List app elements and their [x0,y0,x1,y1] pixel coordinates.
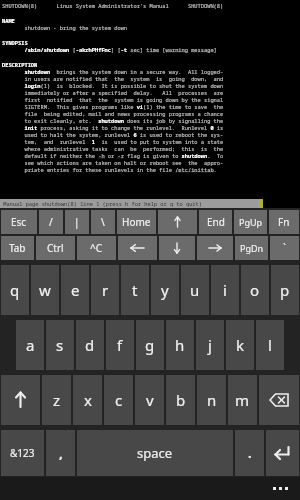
button[interactable]: \ [91,210,115,234]
staticText: ` [283,241,286,255]
button[interactable]: x [73,375,102,425]
button[interactable]: Enter [266,430,299,476]
button[interactable]: s [46,320,74,370]
staticText: \ [101,215,105,229]
staticText: file being edited, mail and news process… [2,110,224,117]
staticText: Manual page shutdown(8) line 1 (press h … [0,200,202,207]
staticText: tem, and runlevel 1 is used to put to sy… [2,138,224,145]
staticText: Home [122,215,151,229]
button[interactable]: Right [197,236,233,260]
staticText: b [176,390,186,410]
staticText: w [39,280,51,300]
staticText: PgUp [239,216,263,228]
button[interactable]: PgDn [235,236,268,260]
staticText: , [59,444,63,462]
staticText: default if neither the -h or -r flag is … [2,152,224,159]
button[interactable]: y [151,265,179,315]
staticText: / [49,215,53,229]
staticText: SHUTDOWN(8) Linux System Administrator's… [2,2,224,9]
button[interactable]: v [135,375,164,425]
staticText: l [268,335,272,355]
button[interactable]: Shift [1,375,40,425]
staticText: Fn [278,215,290,229]
button[interactable]: Ctrl [36,236,75,260]
staticText: first notified that the system is going … [2,96,224,103]
button[interactable]: k [226,320,254,370]
button[interactable]: | [65,210,89,234]
staticText: x [84,390,92,410]
button[interactable]: Fn [269,210,299,234]
button[interactable]: p [271,265,299,315]
button[interactable]: Up [158,210,197,234]
button[interactable]: d [76,320,104,370]
staticText: i [223,280,227,300]
staticText: h [175,335,185,355]
button[interactable]: Left [118,236,157,260]
button[interactable]: i [211,265,239,315]
button[interactable]: space [77,430,233,476]
button[interactable]: f [106,320,134,370]
staticText: Tab [9,241,26,255]
staticText: DESCRIPTION [2,61,38,68]
staticText: e [71,280,80,300]
button[interactable]: m [228,375,257,425]
staticText: p [280,280,290,300]
staticText: ^C [90,241,103,255]
button[interactable]: Esc [1,210,37,234]
staticText: g [145,335,155,355]
button[interactable]: c [104,375,133,425]
button[interactable]: q [1,265,29,315]
button[interactable]: End [199,210,232,234]
button[interactable]: , [46,430,75,476]
staticText: shutdown - bring the system down [2,24,128,31]
button[interactable]: Down [159,236,195,260]
button[interactable]: n [197,375,226,425]
button[interactable]: w [31,265,59,315]
staticText: m [235,390,250,410]
button[interactable]: z [42,375,71,425]
button[interactable]: g [136,320,164,370]
staticText: shutdown brings the system down in a sec… [2,68,224,75]
staticText: j [208,335,212,355]
button[interactable]: Backspace [259,375,299,425]
button[interactable]: j [196,320,224,370]
staticText: n [207,390,217,410]
staticText: SIGTERM. This gives programs like vi(1) … [2,103,224,110]
button[interactable]: a [16,320,44,370]
button[interactable]: PgUp [234,210,267,234]
button[interactable]: l [256,320,284,370]
staticText: immediately or after a specified delay. … [2,89,224,96]
button[interactable]: b [166,375,195,425]
button[interactable]: r [91,265,119,315]
staticText: see which actions are taken on halt or r… [2,159,224,166]
staticText: used to halt the system, runlevel 6 is u… [2,131,224,138]
staticText: d [85,335,95,355]
staticText: Esc [11,215,27,229]
button[interactable]: &123 [1,430,44,476]
button[interactable]: h [166,320,194,370]
button[interactable]: ^C [77,236,116,260]
button[interactable]: . [235,430,264,476]
button[interactable]: o [241,265,269,315]
button[interactable]: ` [270,236,299,260]
staticText: where administrative tasks can be perfor… [2,145,224,152]
staticText: k [236,335,245,355]
button[interactable]: e [61,265,89,315]
staticText: y [161,280,169,300]
staticText: &123 [10,446,35,460]
staticText: t [132,280,138,300]
staticText: . [248,444,252,462]
staticText: s [56,335,64,355]
staticText: r [102,280,109,300]
button[interactable]: Tab [1,236,34,260]
staticText: End [207,215,225,229]
button[interactable]: More options [269,483,292,494]
staticText: u [190,280,200,300]
staticText: login(1) is blocked. It is possible to s… [2,82,224,89]
button[interactable]: u [181,265,209,315]
button[interactable]: Home [117,210,156,234]
staticText: Ctrl [47,241,64,255]
button[interactable]: / [39,210,63,234]
staticText: o [250,280,260,300]
button[interactable]: t [121,265,149,315]
